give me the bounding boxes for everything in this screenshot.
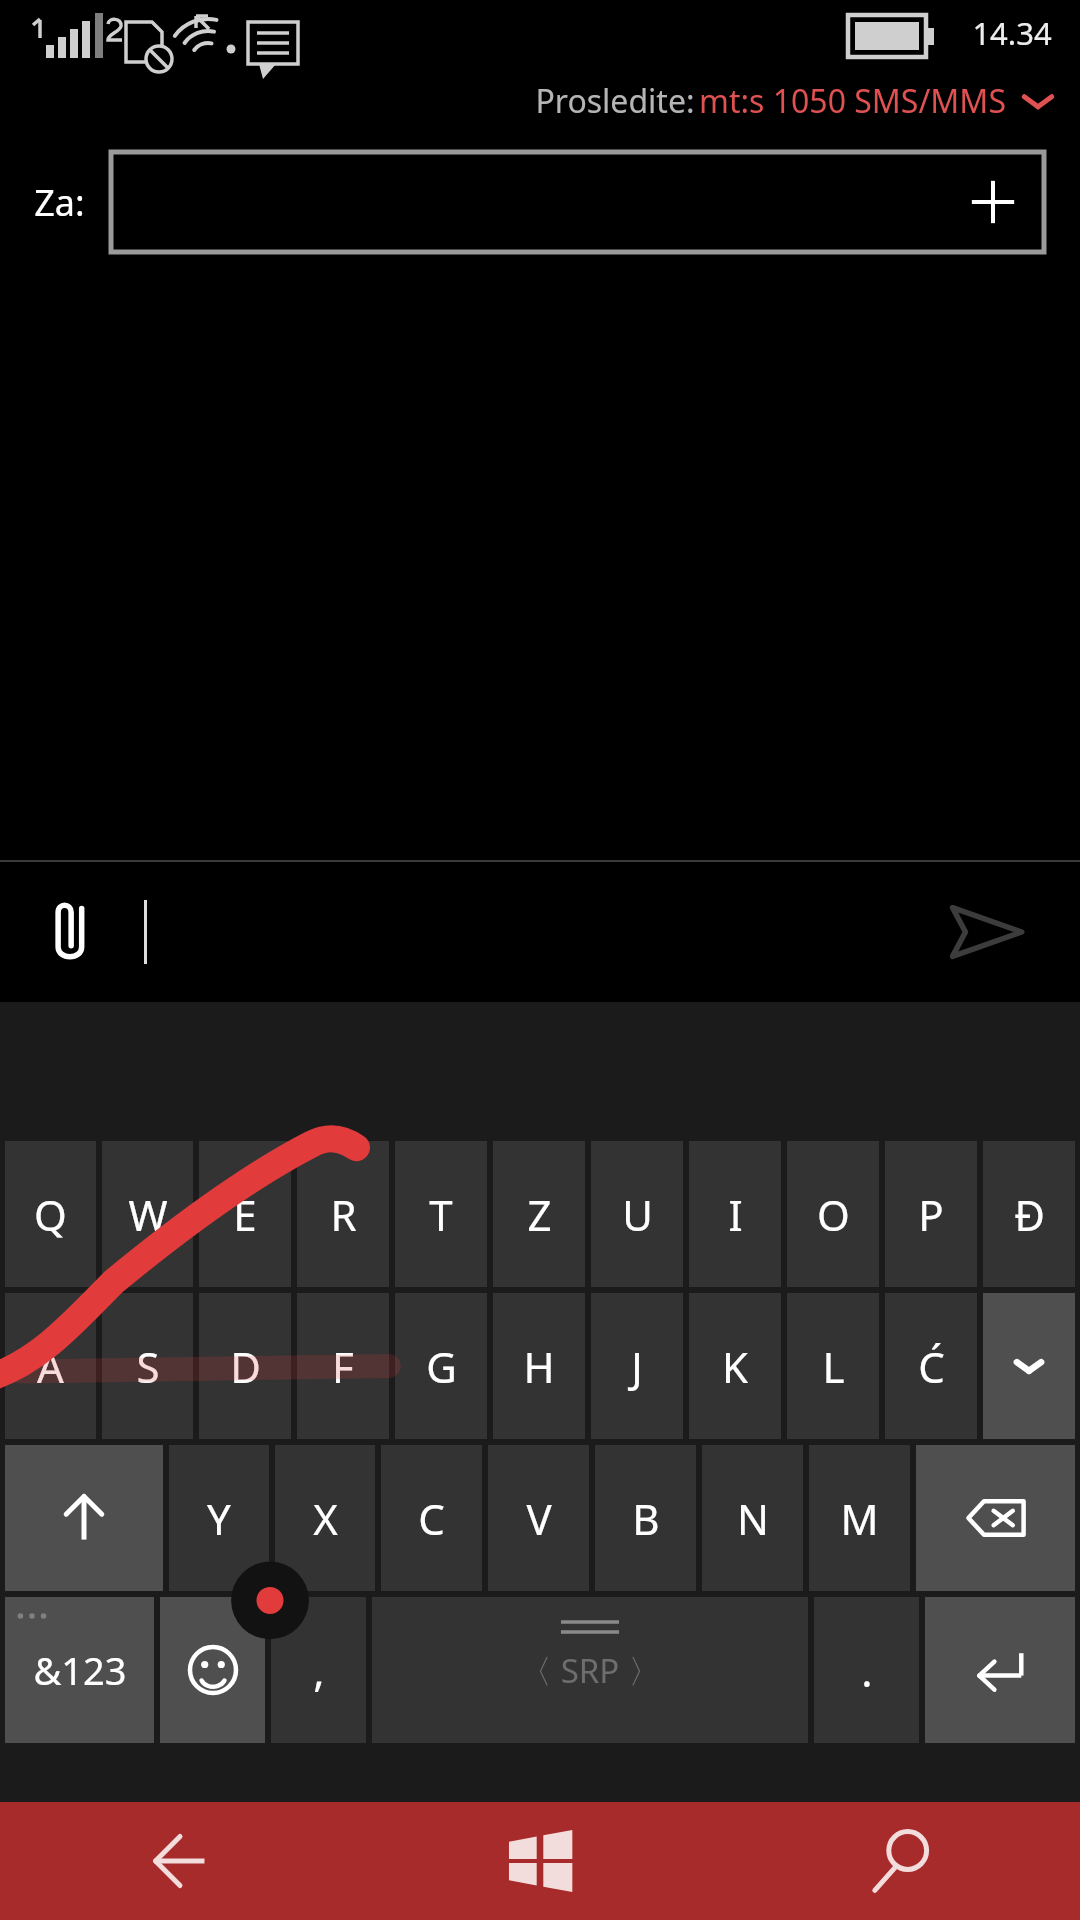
staticText: Za:	[34, 178, 85, 227]
staticText: M	[840, 1490, 879, 1547]
staticText: A	[37, 1338, 64, 1395]
button[interactable]: Enter	[925, 1597, 1075, 1743]
staticText: .	[861, 1642, 873, 1699]
button[interactable]: B	[595, 1445, 696, 1591]
button[interactable]: C	[381, 1445, 482, 1591]
staticText: G	[426, 1338, 457, 1395]
button[interactable]: L	[787, 1293, 879, 1439]
staticText: 14.34	[972, 12, 1052, 54]
button[interactable]: 〈 SRP 〉	[372, 1597, 808, 1743]
staticText: N	[737, 1490, 769, 1547]
button[interactable]: Attach	[42, 901, 104, 963]
button[interactable]: S	[102, 1293, 193, 1439]
button[interactable]: W	[102, 1141, 193, 1287]
button[interactable]: Back	[0, 1802, 360, 1920]
staticText: E	[233, 1186, 257, 1243]
button[interactable]: E	[199, 1141, 291, 1287]
staticText: R	[330, 1186, 357, 1243]
button[interactable]: I	[689, 1141, 781, 1287]
button[interactable]: X	[275, 1445, 375, 1591]
staticText: Prosledite:	[531, 79, 699, 123]
button[interactable]: F	[297, 1293, 389, 1439]
button[interactable]: V	[488, 1445, 589, 1591]
staticText: &123	[33, 1644, 127, 1696]
staticText: D	[230, 1338, 261, 1395]
button[interactable]: Q	[5, 1141, 96, 1287]
button[interactable]: Đ	[983, 1141, 1075, 1287]
button[interactable]: H	[493, 1293, 585, 1439]
button[interactable]: J	[591, 1293, 683, 1439]
staticText: F	[332, 1338, 354, 1395]
button[interactable]: &123	[5, 1597, 154, 1743]
staticText: Y	[207, 1490, 231, 1547]
button[interactable]: T	[395, 1141, 487, 1287]
button[interactable]: .	[814, 1597, 919, 1743]
staticText: J	[631, 1338, 643, 1395]
button[interactable]: Prosledite:	[0, 66, 1080, 136]
button[interactable]: R	[297, 1141, 389, 1287]
staticText: P	[918, 1186, 944, 1243]
button[interactable]: G	[395, 1293, 487, 1439]
button[interactable]: U	[591, 1141, 683, 1287]
button[interactable]: Search	[720, 1802, 1080, 1920]
staticText: I	[728, 1186, 743, 1243]
button[interactable]: Ć	[885, 1293, 977, 1439]
other: Add recipient	[970, 179, 1016, 225]
staticText: ,	[313, 1642, 325, 1699]
staticText: O	[817, 1186, 850, 1243]
button[interactable]: M	[809, 1445, 910, 1591]
button[interactable]: Y	[169, 1445, 269, 1591]
staticText: W	[128, 1186, 168, 1243]
button[interactable]: Z	[493, 1141, 585, 1287]
staticText: S	[136, 1338, 160, 1395]
button[interactable]: N	[702, 1445, 803, 1591]
staticText: 〈 SRP 〉	[519, 1648, 661, 1693]
button[interactable]: A	[5, 1293, 96, 1439]
button[interactable]: Add recipient	[111, 152, 1044, 252]
staticText: V	[526, 1490, 552, 1547]
staticText: Z	[527, 1186, 552, 1243]
staticText: Q	[34, 1186, 67, 1243]
button[interactable]: Start	[360, 1802, 720, 1920]
button[interactable]: P	[885, 1141, 977, 1287]
button[interactable]: D	[199, 1293, 291, 1439]
button[interactable]: K	[689, 1293, 781, 1439]
staticText: U	[622, 1186, 653, 1243]
staticText: Đ	[1014, 1186, 1045, 1243]
button[interactable]: Emoji	[160, 1597, 265, 1743]
staticText: mt:s 1050 SMS/MMS	[699, 79, 1006, 123]
staticText: K	[722, 1338, 748, 1395]
staticText: T	[429, 1186, 453, 1243]
staticText: B	[632, 1490, 660, 1547]
button[interactable]: Hide keyboard	[983, 1293, 1075, 1439]
staticText: L	[822, 1338, 845, 1395]
staticText: H	[523, 1338, 555, 1395]
staticText: Ć	[918, 1338, 945, 1395]
staticText: X	[313, 1490, 338, 1547]
button[interactable]: O	[787, 1141, 879, 1287]
button[interactable]: ,	[271, 1597, 366, 1743]
button[interactable]: Shift	[5, 1445, 163, 1591]
button[interactable]: Send	[948, 894, 1024, 970]
staticText: C	[418, 1490, 445, 1547]
button[interactable]: Backspace	[916, 1445, 1075, 1591]
